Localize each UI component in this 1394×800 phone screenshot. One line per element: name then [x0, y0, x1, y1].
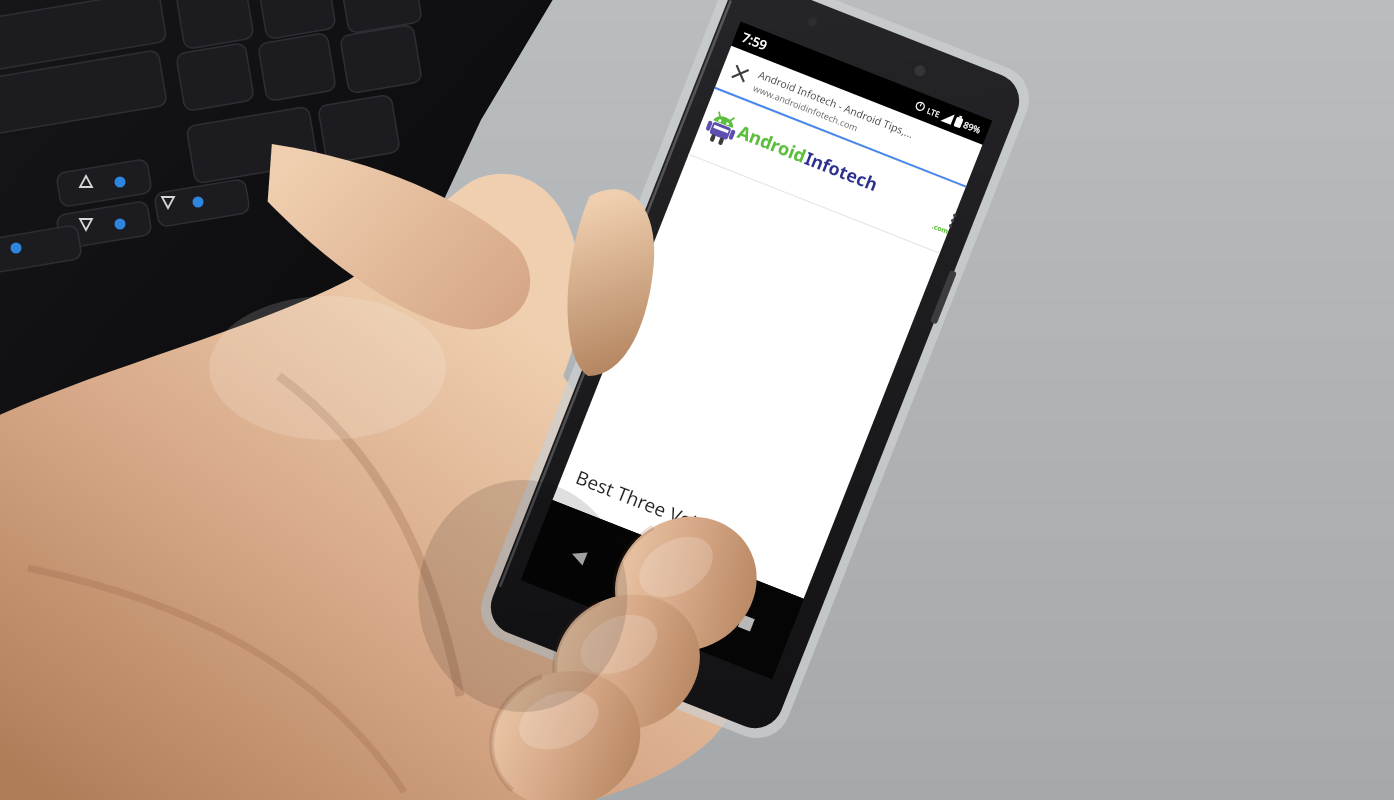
staticText: Android Infotech - Android Tips,...: [756, 67, 916, 141]
staticText: LTE: [925, 105, 942, 120]
button[interactable]: Recent apps: [688, 566, 804, 679]
staticText: Android: [734, 119, 810, 169]
staticText: 89%: [962, 118, 983, 136]
staticText: www.androidinfotech.com: [752, 81, 860, 134]
button[interactable]: Close tab: [717, 50, 763, 96]
staticText: Best Three Voice to: [572, 464, 741, 551]
button[interactable]: Back: [521, 500, 636, 613]
button[interactable]: Home: [605, 533, 720, 646]
staticText: Infotech: [801, 146, 882, 197]
staticText: 7:59: [739, 28, 770, 54]
staticText: .com: [930, 221, 950, 237]
